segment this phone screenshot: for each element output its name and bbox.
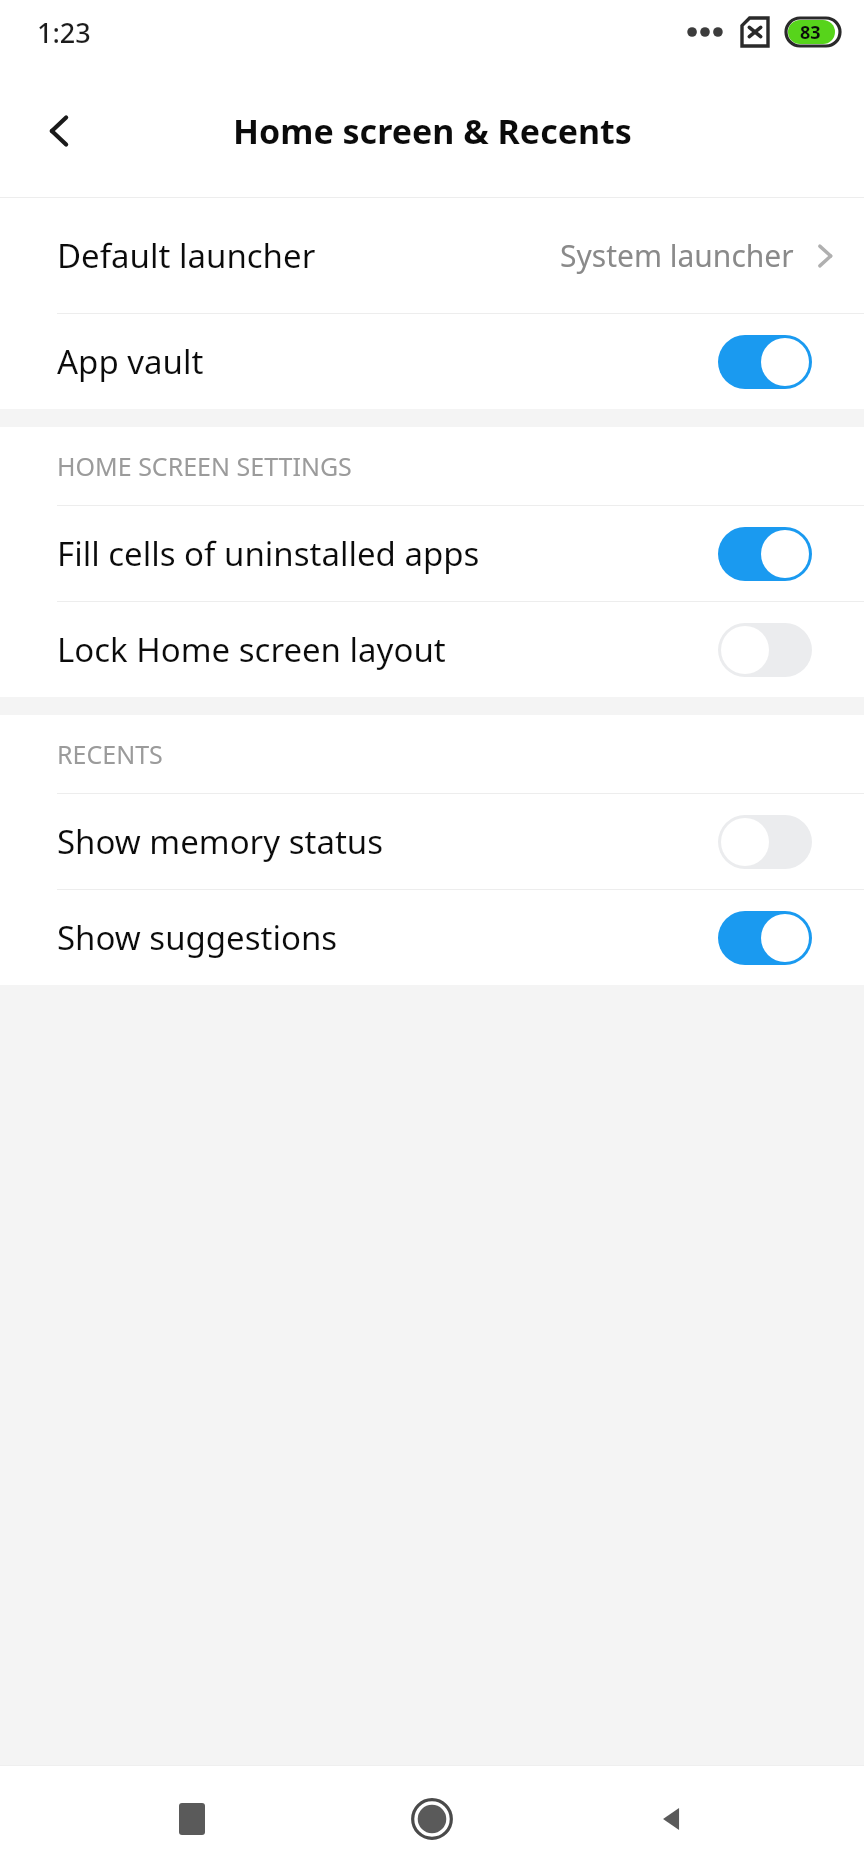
staticText: Home screen & Recents <box>233 108 632 154</box>
button[interactable]: Toggle on <box>718 527 812 581</box>
button[interactable]: Show suggestions <box>0 890 864 985</box>
button[interactable]: Toggle off <box>718 623 812 677</box>
button[interactable]: Back <box>24 95 96 167</box>
button[interactable]: Toggle off <box>718 815 812 869</box>
button[interactable]: Fill cells of uninstalled apps <box>0 506 864 601</box>
button[interactable]: Recents <box>150 1777 234 1861</box>
staticText: Default launcher <box>57 233 316 278</box>
staticText: Show memory status <box>57 819 384 864</box>
button[interactable]: Toggle on <box>718 335 812 389</box>
staticText: 1:23 <box>37 14 91 51</box>
staticText: RECENTS <box>57 737 163 771</box>
staticText: Fill cells of uninstalled apps <box>57 531 480 576</box>
button[interactable]: App vault <box>0 314 864 409</box>
staticText: System launcher <box>560 235 794 276</box>
button[interactable]: Lock Home screen layout <box>0 602 864 697</box>
button[interactable]: Toggle on <box>718 911 812 965</box>
button[interactable]: Back <box>630 1777 714 1861</box>
staticText: Lock Home screen layout <box>57 627 446 672</box>
button[interactable]: Show memory status <box>0 794 864 889</box>
button[interactable]: Home <box>390 1777 474 1861</box>
staticText: 83 <box>800 20 821 45</box>
button[interactable]: Default launcher <box>0 198 864 313</box>
staticText: App vault <box>57 339 204 384</box>
staticText: Show suggestions <box>57 915 338 960</box>
staticText: HOME SCREEN SETTINGS <box>57 449 352 483</box>
